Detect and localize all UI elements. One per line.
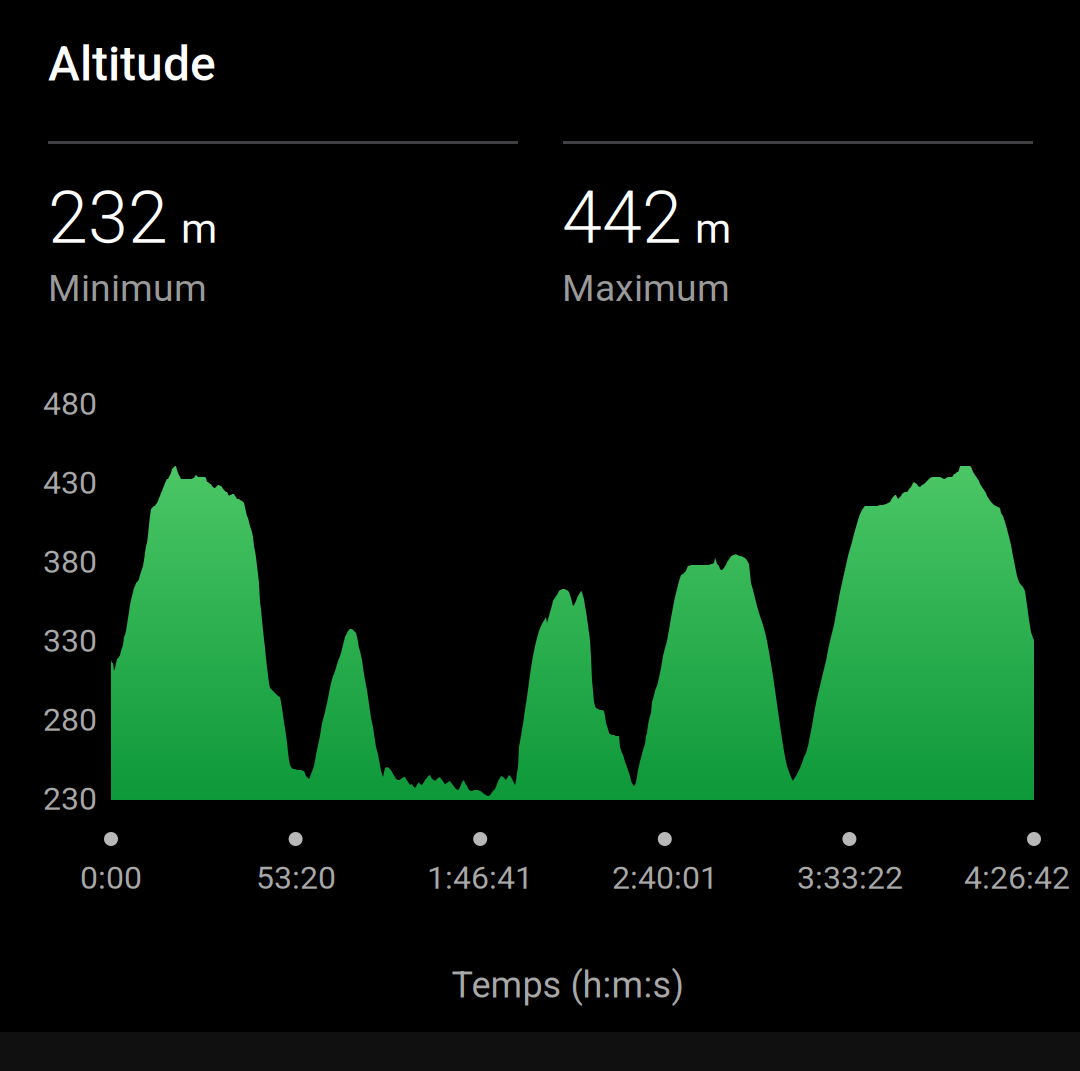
staticText: Minimum bbox=[48, 266, 207, 310]
staticText: Temps (h:m:s) bbox=[451, 964, 684, 1006]
button[interactable]: 232 bbox=[48, 176, 517, 310]
staticText: Altitude bbox=[48, 36, 216, 92]
staticText: 4:26:42 bbox=[964, 859, 1070, 896]
staticText: 480 bbox=[43, 385, 97, 422]
staticText: m bbox=[181, 204, 217, 253]
staticText: 330 bbox=[43, 622, 97, 659]
staticText: 430 bbox=[43, 464, 97, 501]
staticText: 53:20 bbox=[256, 859, 336, 896]
staticText: 442 bbox=[562, 176, 682, 260]
staticText: 2:40:01 bbox=[612, 859, 718, 896]
staticText: 232 bbox=[48, 176, 168, 260]
staticText: 380 bbox=[43, 543, 97, 580]
staticText: Maximum bbox=[562, 266, 730, 310]
staticText: m bbox=[695, 204, 731, 253]
button[interactable]: Altitude chart bbox=[0, 0, 1080, 1071]
staticText: 1:46:41 bbox=[427, 859, 533, 896]
staticText: 0:00 bbox=[80, 859, 142, 896]
staticText: 230 bbox=[43, 780, 97, 817]
staticText: 280 bbox=[43, 701, 97, 738]
button[interactable]: 442 bbox=[562, 176, 1032, 310]
staticText: 3:33:22 bbox=[797, 859, 903, 896]
